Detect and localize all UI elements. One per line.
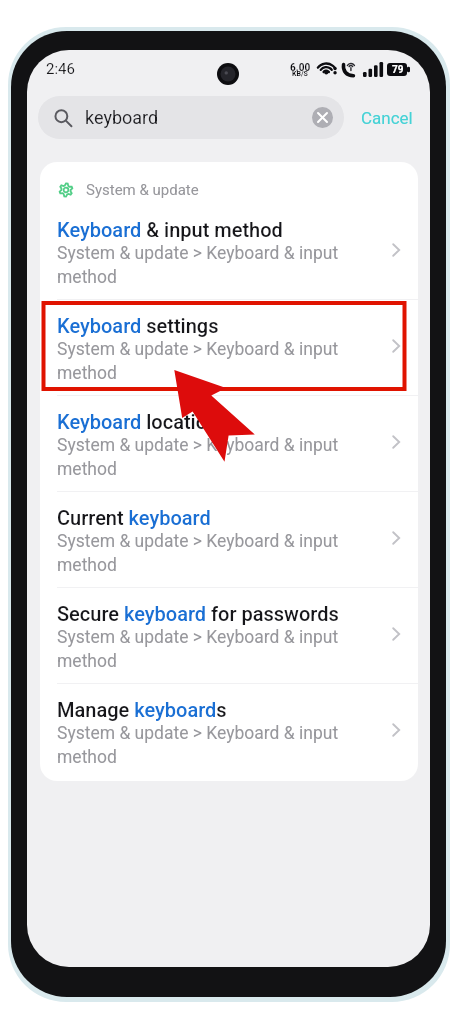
staticText: System & update > Keyboard & input metho… <box>57 531 349 575</box>
button[interactable]: keyboard <box>38 96 344 139</box>
staticText: Current keyboard <box>57 506 211 529</box>
staticText: Manage keyboards <box>57 698 227 721</box>
staticText: System & update > Keyboard & input metho… <box>57 723 349 767</box>
staticText: Cancel <box>361 108 413 128</box>
staticText: 6.00 <box>290 62 311 74</box>
staticText: keyboard <box>85 107 159 128</box>
staticText: 2:46 <box>46 60 75 78</box>
button[interactable]: Keyboard settings <box>40 302 418 398</box>
button[interactable]: Cancel <box>354 96 420 139</box>
staticText: Keyboard location <box>57 410 219 433</box>
staticText: Secure keyboard for passwords <box>57 602 339 625</box>
button[interactable]: Secure keyboard for passwords <box>40 590 418 686</box>
staticText: KB/S <box>292 70 308 78</box>
staticText: System & update > Keyboard & input metho… <box>57 339 349 383</box>
staticText: 79 <box>392 64 404 76</box>
button[interactable]: Manage keyboards <box>40 686 418 781</box>
button[interactable]: Current keyboard <box>40 494 418 590</box>
staticText: System & update > Keyboard & input metho… <box>57 435 349 479</box>
button[interactable]: Keyboard & input method <box>40 206 418 302</box>
button[interactable]: Clear search <box>312 107 333 128</box>
staticText: Keyboard settings <box>57 314 219 337</box>
staticText: System & update > Keyboard & input metho… <box>57 243 349 287</box>
staticText: Keyboard & input method <box>57 218 283 241</box>
staticText: System & update <box>86 181 199 199</box>
button[interactable]: Keyboard location <box>40 398 418 494</box>
staticText: System & update > Keyboard & input metho… <box>57 627 349 671</box>
